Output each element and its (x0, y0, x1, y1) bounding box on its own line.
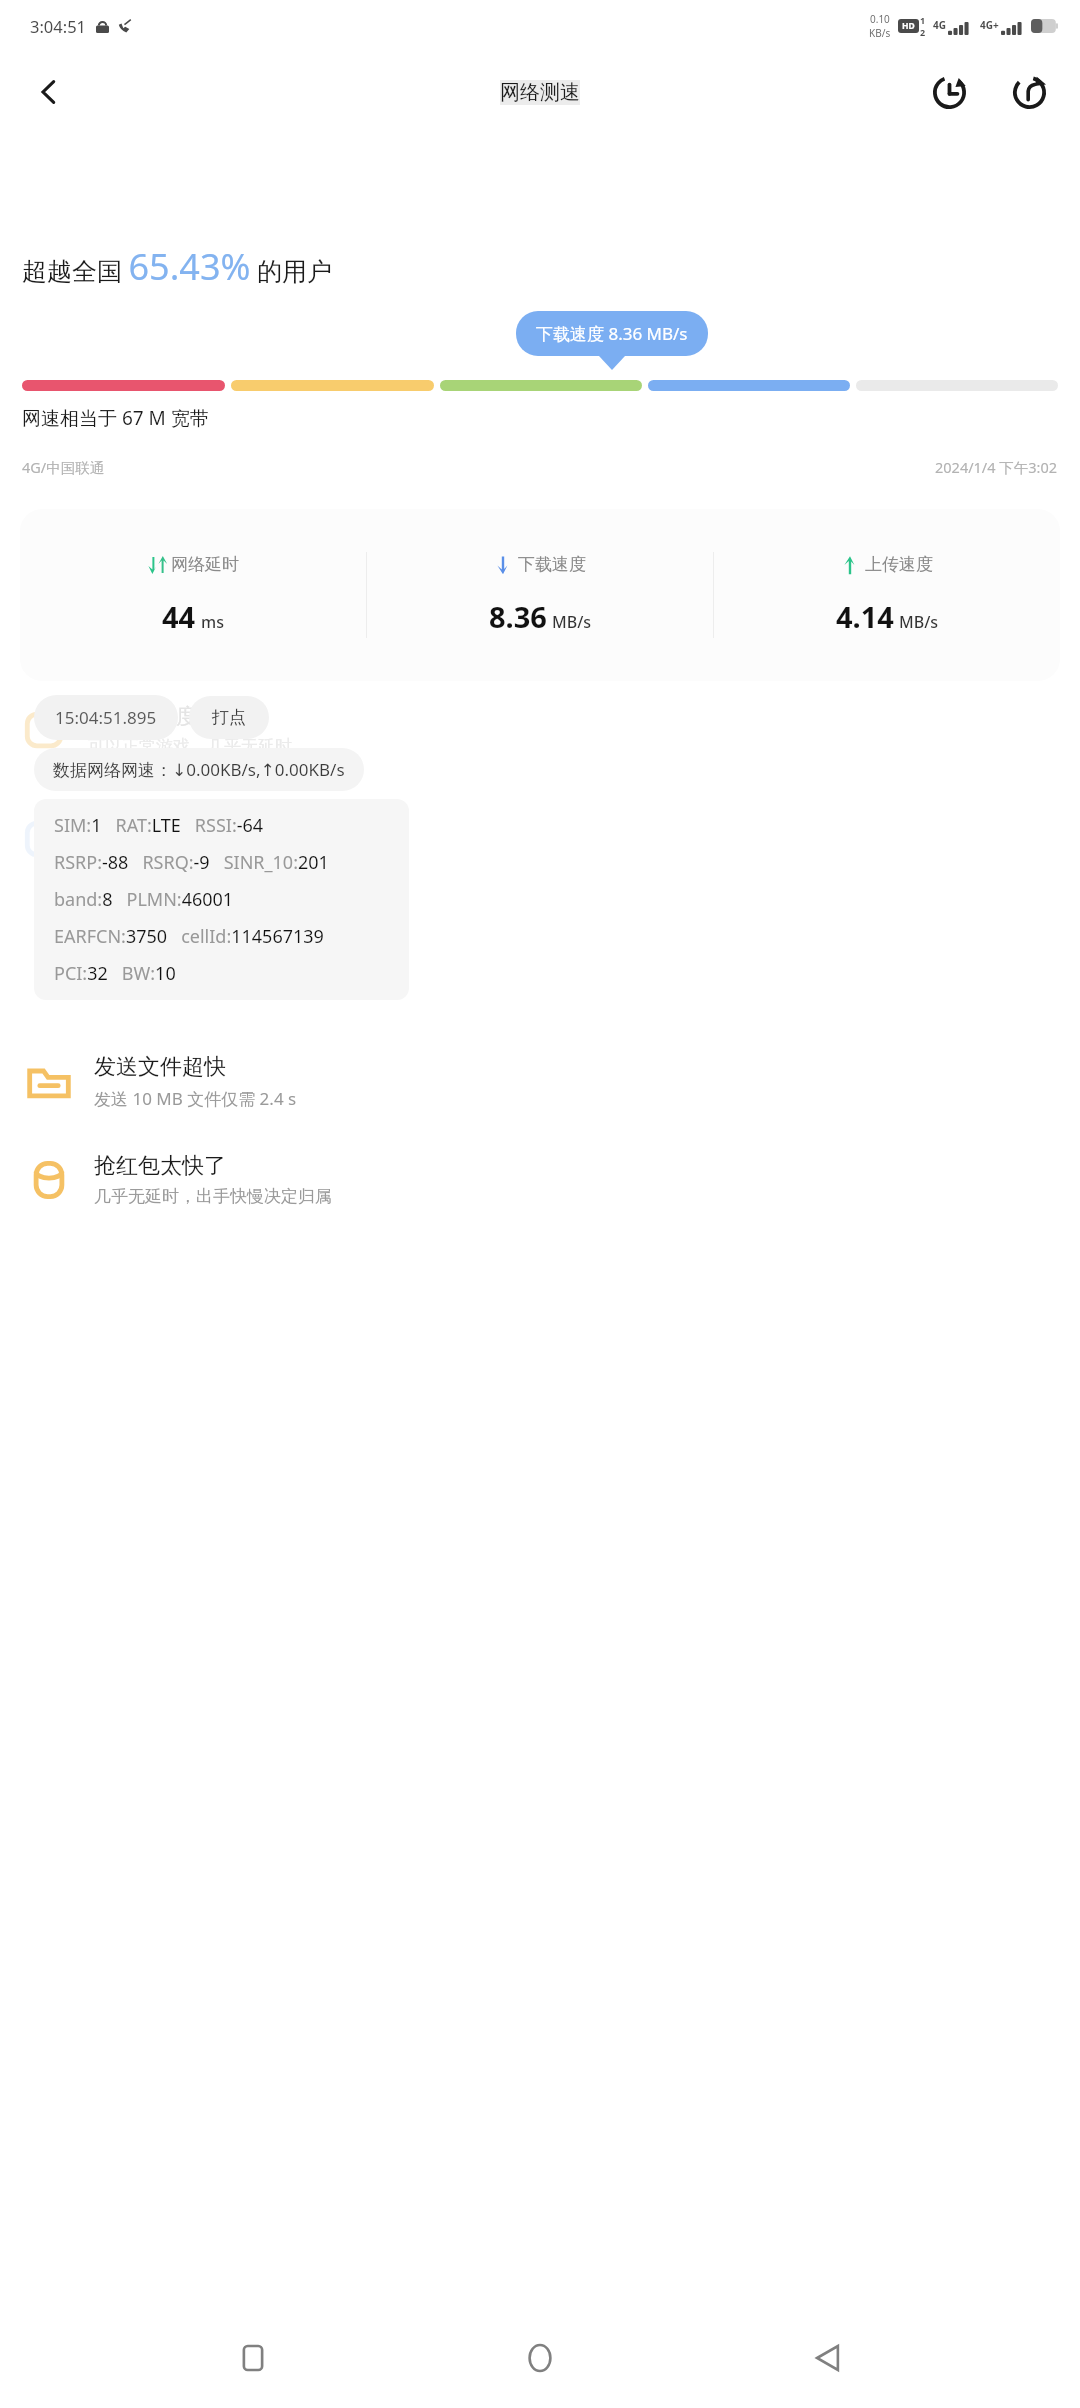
staticText: 数据网络网速：↓0.00KB/s,↑0.00KB/s (53, 758, 345, 781)
staticText: 发送 10 MB 文件仅需 2.4 s (94, 1087, 297, 1110)
staticText: 下载速度 8.36 MB/s (536, 322, 688, 345)
button[interactable]: History (920, 63, 978, 121)
staticText: 0.10 (870, 12, 890, 26)
staticText: 几乎无延时，出手快慢决定归属 (94, 1186, 332, 1207)
staticText: 可看蓝光视频 (88, 811, 220, 839)
staticText: 下载速度 (518, 554, 586, 575)
staticText: 44 (162, 597, 196, 636)
staticText: 8.36 (489, 597, 547, 636)
button[interactable]: Retest (1000, 63, 1058, 121)
staticText: 超越全国 65.43% 的用户 (22, 242, 332, 291)
button[interactable]: 下载速度 (367, 554, 713, 636)
staticText: 1 (920, 14, 926, 26)
staticText: MB/s (552, 611, 592, 633)
staticText: SIM:1 RAT:LTE RSSI:-64 (54, 813, 264, 838)
staticText: 4.14 (836, 597, 894, 636)
staticText: ms (201, 611, 224, 633)
staticText: MB/s (899, 611, 939, 633)
staticText: 可以正常游戏，几乎无延时 (88, 736, 292, 757)
staticText: 4G (933, 18, 946, 32)
staticText: 网速相当于 67 M 宽带 (22, 405, 209, 431)
button[interactable]: 网络延时 (20, 554, 366, 636)
button[interactable]: 上传速度 (714, 554, 1060, 636)
staticText: 发送文件超快 (94, 1053, 226, 1081)
staticText: 2024/1/4 下午3:02 (935, 457, 1058, 477)
staticText: 打点 (212, 707, 246, 728)
staticText: PCI:32 BW:10 (54, 961, 176, 986)
staticText: 15:04:51.895 (55, 706, 157, 729)
button[interactable]: Recents (218, 2323, 288, 2393)
staticText: KB/s (869, 26, 891, 40)
staticText: 游戏流畅度高 (88, 703, 220, 731)
staticText: 4G+ (980, 18, 999, 32)
staticText: band:8 PLMN:46001 (54, 887, 234, 912)
staticText: 4G/中国联通 (22, 457, 105, 477)
staticText: 3:04:51 (30, 15, 87, 37)
button[interactable]: 抢红包太快了 (0, 1152, 1080, 1207)
button[interactable]: Back (22, 65, 76, 119)
button[interactable]: 15:04:51.895 (55, 706, 157, 729)
button[interactable]: 发送文件超快 (0, 1053, 1080, 1110)
staticText: 抢红包太快了 (94, 1152, 226, 1180)
staticText: HD (902, 20, 915, 32)
button[interactable]: Home (505, 2323, 575, 2393)
staticText: RSRP:-88 RSRQ:-9 SINR_10:201 (54, 850, 329, 875)
staticText: 2 (920, 26, 926, 38)
staticText: 网络测速 (500, 80, 580, 105)
button[interactable]: Back (793, 2323, 863, 2393)
button[interactable]: 打点 (212, 707, 246, 728)
staticText: 上传速度 (865, 554, 933, 575)
staticText: 加载速度超快：8.36 MB/s (88, 844, 287, 867)
staticText: 网络延时 (171, 554, 239, 575)
staticText: EARFCN:3750 cellId:114567139 (54, 924, 324, 949)
